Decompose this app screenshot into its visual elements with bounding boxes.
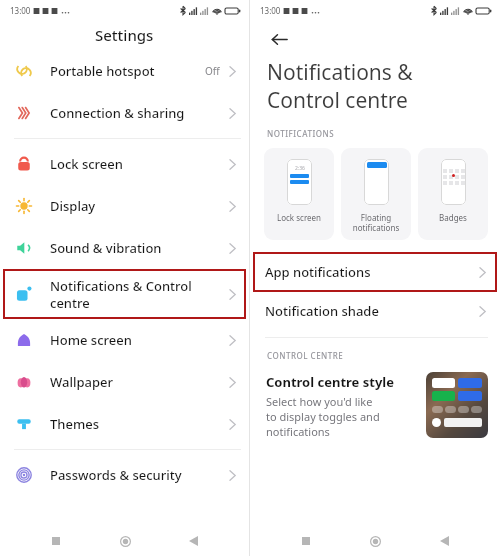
- staticText: 2:36: [295, 165, 305, 172]
- button[interactable]: Floating notifications: [341, 148, 411, 240]
- button[interactable]: Back: [431, 528, 457, 554]
- staticText: Notifications & Control centre: [50, 277, 192, 312]
- staticText: Portable hotspot: [50, 62, 155, 80]
- button[interactable]: Themes: [0, 403, 249, 445]
- staticText: Display: [50, 197, 96, 215]
- staticText: Sound & vibration: [50, 239, 162, 257]
- button[interactable]: Home: [362, 528, 388, 554]
- button[interactable]: Wallpaper: [0, 361, 249, 403]
- staticText: Badges: [420, 212, 486, 223]
- staticText: Lock screen: [50, 155, 123, 173]
- staticText: App notifications: [265, 263, 371, 281]
- staticText: NOTIFICATIONS: [267, 128, 335, 139]
- button[interactable]: Passwords & security: [0, 454, 249, 496]
- staticText: Home screen: [50, 331, 132, 349]
- button[interactable]: Home: [112, 528, 138, 554]
- staticText: Lock screen: [266, 212, 332, 223]
- staticText: Settings: [95, 25, 154, 45]
- staticText: 13:00: [10, 5, 31, 16]
- staticText: Connection & sharing: [50, 104, 185, 122]
- button[interactable]: Lock screen: [0, 143, 249, 185]
- button[interactable]: 2:36: [264, 148, 334, 240]
- staticText: Wallpaper: [50, 373, 113, 391]
- button[interactable]: Back: [266, 26, 292, 52]
- button[interactable]: Recents: [293, 528, 319, 554]
- button[interactable]: Display: [0, 185, 249, 227]
- staticText: Themes: [50, 415, 100, 433]
- button[interactable]: Notification shade: [250, 292, 500, 330]
- button[interactable]: Sound & vibration: [0, 227, 249, 269]
- button[interactable]: Portable hotspot: [0, 50, 249, 92]
- staticText: Passwords & security: [50, 466, 182, 484]
- button[interactable]: Home screen: [0, 319, 249, 361]
- button[interactable]: App notifications: [253, 252, 497, 292]
- staticText: Select how you'd like to display toggles…: [266, 394, 380, 439]
- button[interactable]: Back: [180, 528, 206, 554]
- staticText: CONTROL CENTRE: [267, 350, 344, 361]
- staticText: Notification shade: [265, 302, 379, 320]
- button[interactable]: Recents: [43, 528, 69, 554]
- staticText: Control centre style: [266, 373, 394, 391]
- staticText: 13:00: [260, 5, 281, 16]
- staticText: Floating notifications: [343, 212, 409, 233]
- button[interactable]: Notifications & Control centre: [3, 269, 246, 319]
- button[interactable]: Control centre style: [266, 372, 488, 439]
- button[interactable]: Connection & sharing: [0, 92, 249, 134]
- staticText: Off: [205, 64, 220, 78]
- staticText: Notifications & Control centre: [267, 58, 413, 114]
- button[interactable]: Badges: [418, 148, 488, 240]
